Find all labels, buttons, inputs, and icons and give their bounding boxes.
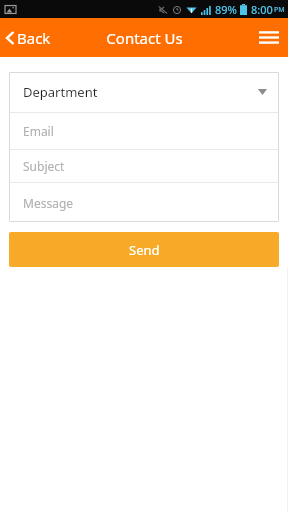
staticText: 89% [215, 2, 237, 17]
staticText: Back [17, 28, 51, 48]
button[interactable]: Department [9, 72, 279, 112]
staticText: Department [23, 83, 98, 101]
staticText: Email [23, 123, 54, 139]
button[interactable]: Subject [9, 150, 279, 182]
staticText: Message [23, 195, 74, 211]
staticText: 8:00 [251, 2, 273, 17]
button[interactable]: Message [9, 183, 279, 222]
button[interactable]: Back [0, 21, 59, 55]
staticText: Subject [23, 158, 65, 174]
button[interactable]: Email [9, 113, 279, 149]
button[interactable]: Send [9, 232, 279, 267]
staticText: PM [274, 5, 285, 15]
staticText: Contact Us [106, 28, 183, 48]
button[interactable]: Menu [250, 20, 288, 55]
staticText: Send [129, 241, 160, 259]
